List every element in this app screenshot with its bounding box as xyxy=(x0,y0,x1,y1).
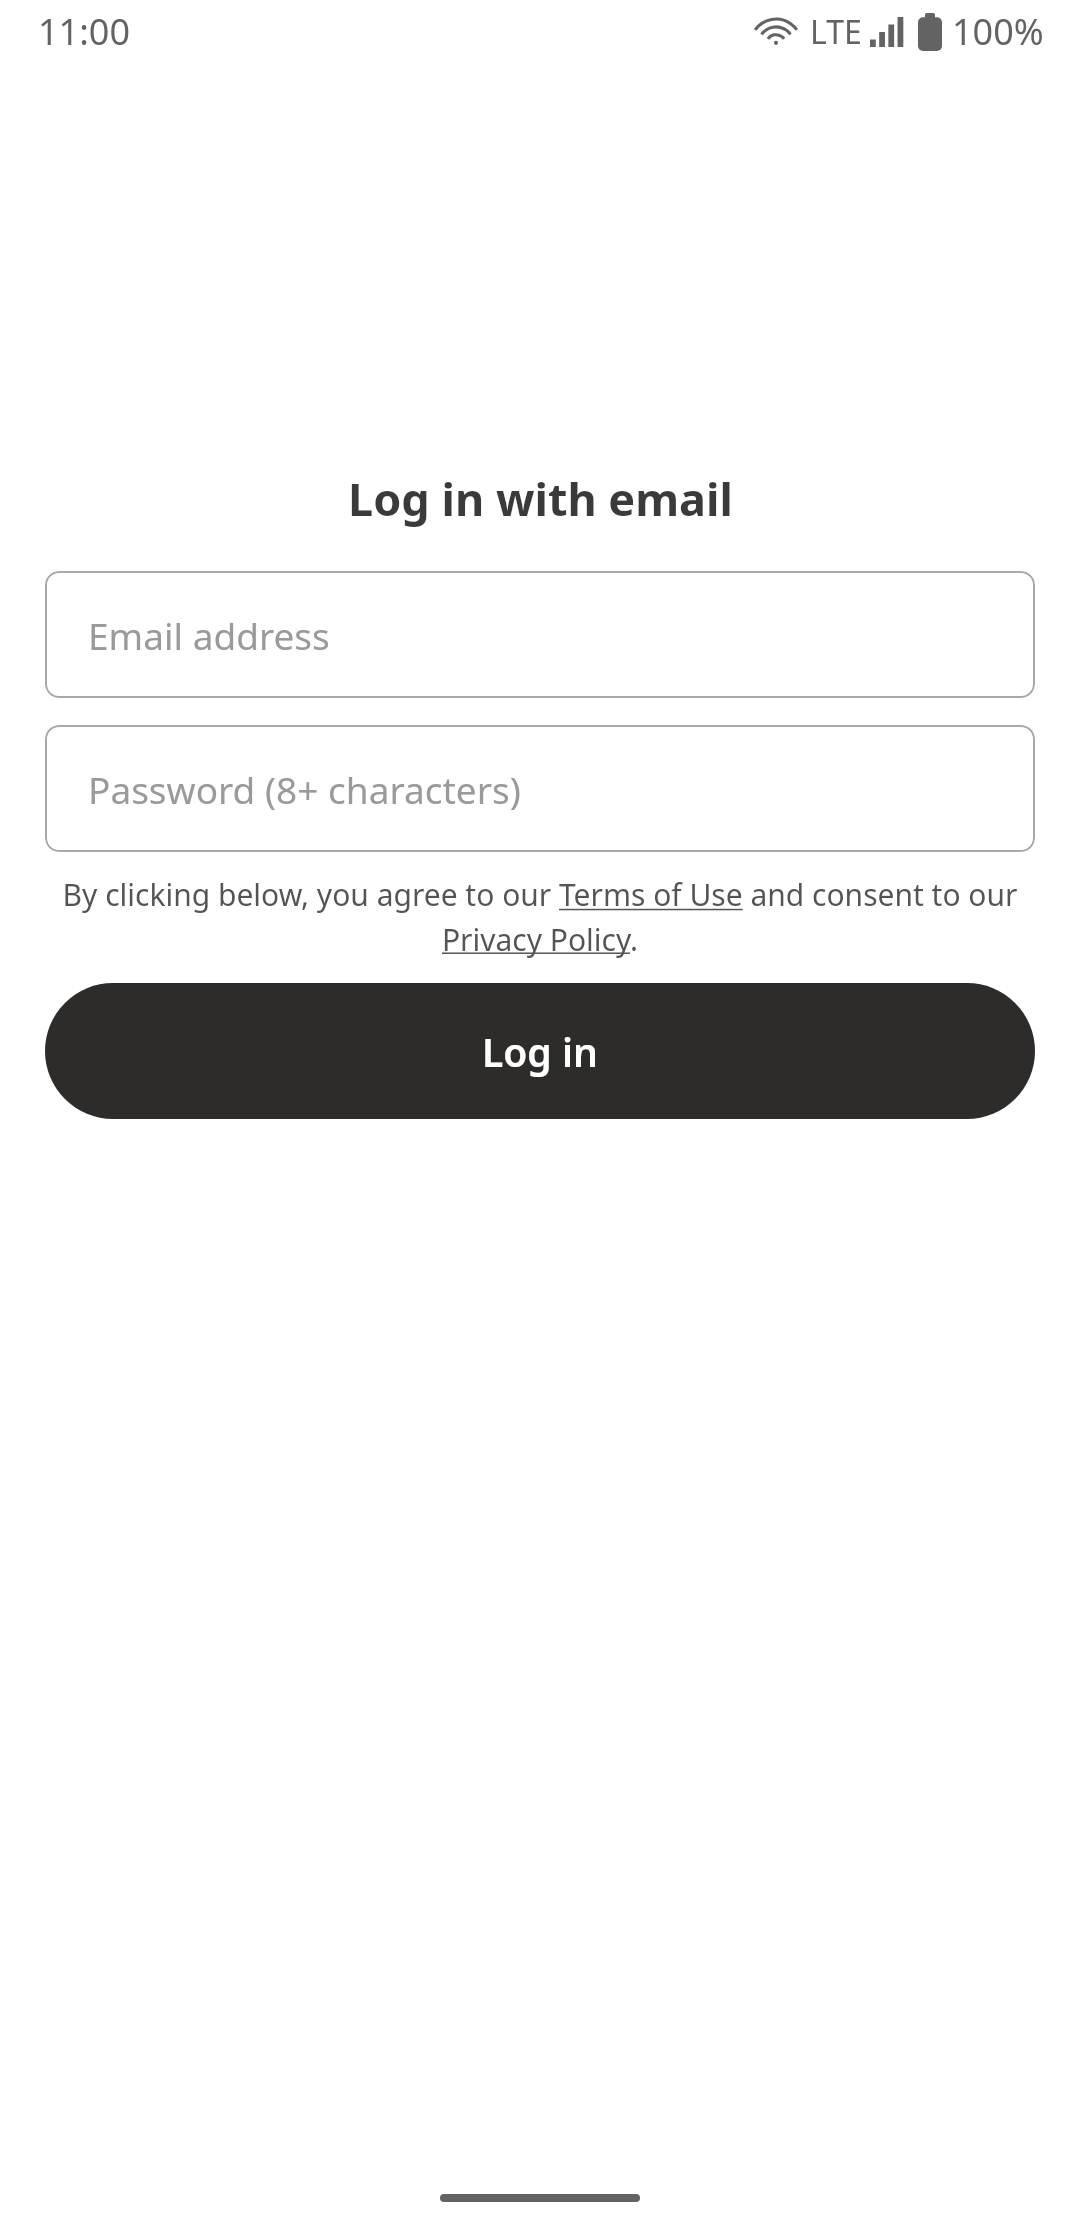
staticText: 11:00 xyxy=(38,7,131,56)
staticText: LTE xyxy=(810,10,862,54)
staticText: Password (8+ characters) xyxy=(88,764,521,814)
staticText: Log in with email xyxy=(348,468,733,529)
staticText: By clicking below, you agree to our Term… xyxy=(38,874,1042,959)
button[interactable]: Email address xyxy=(45,571,1035,698)
button[interactable]: By clicking below, you agree to our Term… xyxy=(38,874,1042,959)
button[interactable]: Password (8+ characters) xyxy=(45,725,1035,852)
staticText: Log in xyxy=(482,1025,598,1078)
staticText: Email address xyxy=(88,610,330,660)
button[interactable]: Log in xyxy=(45,983,1035,1119)
staticText: 100% xyxy=(952,7,1044,56)
